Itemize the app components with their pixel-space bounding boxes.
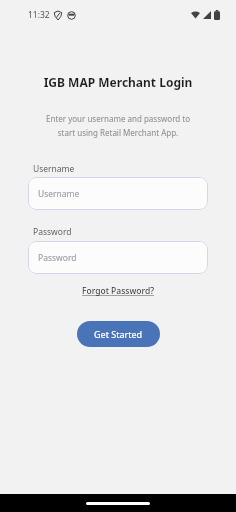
staticText: Password xyxy=(38,252,77,264)
button[interactable]: Password xyxy=(28,241,208,274)
staticText: IGB MAP Merchant Login xyxy=(0,74,236,90)
staticText: 11:32 xyxy=(28,9,50,21)
button[interactable]: Get Started xyxy=(77,321,160,347)
staticText: Get Started xyxy=(94,328,143,340)
staticText: Username xyxy=(33,163,75,175)
staticText: Forgot Password? xyxy=(82,285,154,297)
button[interactable]: Username xyxy=(28,177,208,210)
staticText: Password xyxy=(33,226,72,238)
button[interactable]: Forgot Password? xyxy=(78,283,158,299)
staticText: Username xyxy=(38,188,80,200)
staticText: Enter your username and password to star… xyxy=(0,113,236,138)
